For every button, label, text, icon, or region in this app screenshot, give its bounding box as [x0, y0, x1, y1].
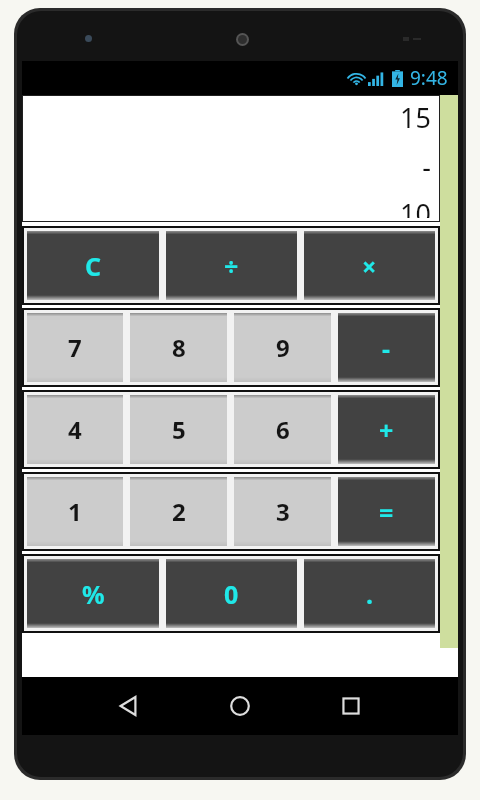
- staticText: 2: [172, 495, 186, 528]
- button[interactable]: 1: [27, 477, 123, 546]
- staticText: C: [85, 249, 102, 283]
- staticText: 8: [172, 331, 186, 364]
- staticText: +: [379, 413, 394, 447]
- button[interactable]: 9: [234, 313, 331, 382]
- button[interactable]: 4: [27, 395, 123, 464]
- staticText: ÷: [224, 249, 239, 283]
- button[interactable]: C: [27, 231, 159, 300]
- staticText: 9:48: [410, 65, 448, 91]
- button[interactable]: 8: [130, 313, 227, 382]
- staticText: 4: [68, 413, 82, 446]
- staticText: 7: [68, 331, 82, 364]
- staticText: ×: [362, 249, 377, 283]
- button[interactable]: Back: [103, 680, 155, 732]
- staticText: =: [379, 495, 394, 529]
- staticText: 5: [172, 413, 186, 446]
- staticText: 6: [276, 413, 290, 446]
- staticText: .: [366, 577, 374, 611]
- button[interactable]: Home: [214, 680, 266, 732]
- button[interactable]: 3: [234, 477, 331, 546]
- staticText: 15: [400, 99, 431, 136]
- button[interactable]: =: [338, 477, 435, 546]
- staticText: %: [82, 577, 105, 611]
- button[interactable]: ×: [304, 231, 435, 300]
- button[interactable]: 5: [130, 395, 227, 464]
- button[interactable]: 2: [130, 477, 227, 546]
- staticText: 10: [400, 195, 431, 218]
- button[interactable]: Recent apps: [325, 680, 377, 732]
- button[interactable]: 0: [166, 559, 297, 628]
- button[interactable]: -: [338, 313, 435, 382]
- button[interactable]: %: [27, 559, 159, 628]
- staticText: 3: [276, 495, 290, 528]
- button[interactable]: 7: [27, 313, 123, 382]
- staticText: 0: [224, 577, 239, 611]
- button[interactable]: ÷: [166, 231, 297, 300]
- staticText: 9: [276, 331, 290, 364]
- button[interactable]: .: [304, 559, 435, 628]
- button[interactable]: +: [338, 395, 435, 464]
- staticText: -: [382, 331, 391, 365]
- button[interactable]: 6: [234, 395, 331, 464]
- staticText: -: [422, 148, 431, 185]
- staticText: 1: [68, 495, 82, 528]
